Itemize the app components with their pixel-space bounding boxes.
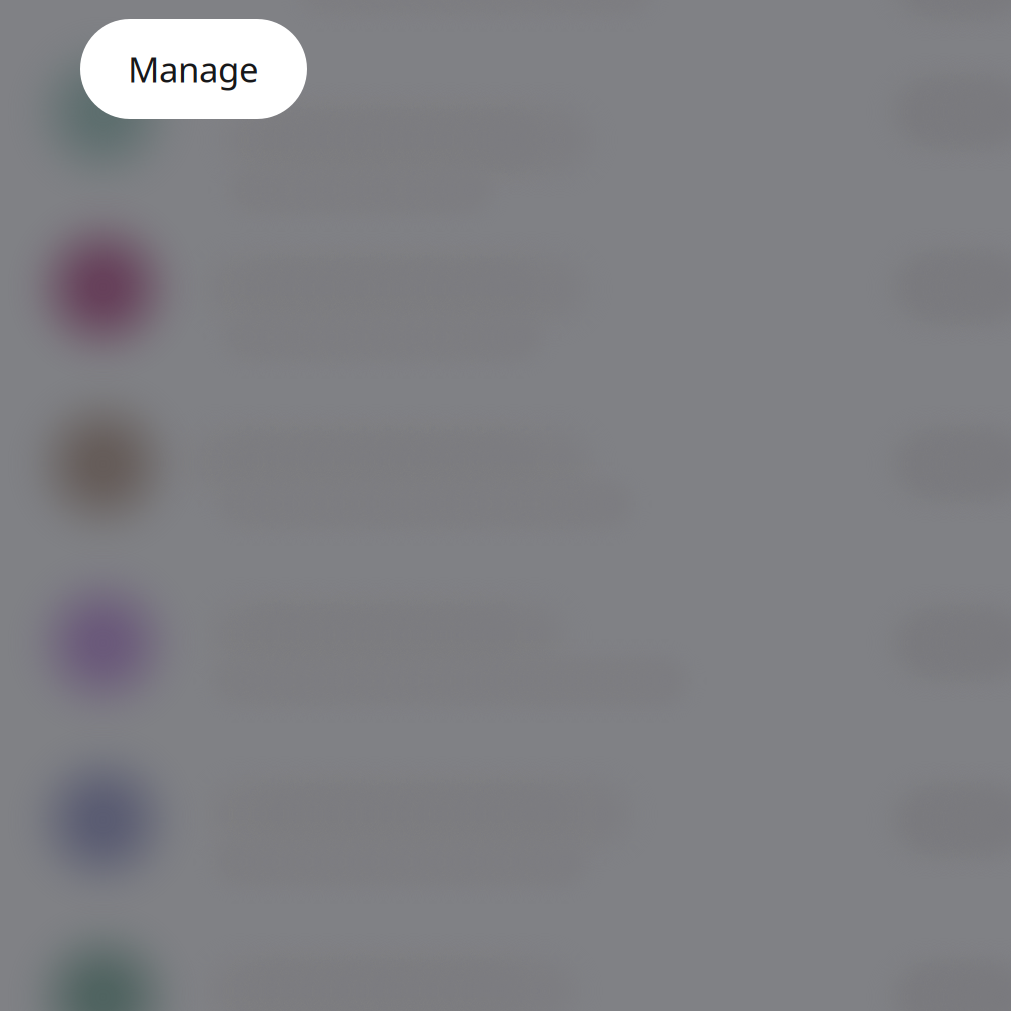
staticText: Manage bbox=[128, 46, 259, 92]
button[interactable]: Manage bbox=[80, 19, 307, 119]
